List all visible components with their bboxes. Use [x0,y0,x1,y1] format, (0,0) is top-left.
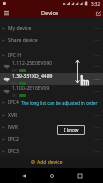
button[interactable]: Home [45,169,58,182]
button[interactable]: Back [17,169,30,182]
button[interactable]: Recents [73,169,86,182]
staticText: XVR [8,112,18,119]
staticText: The long list can be adjusted in order [21,100,98,106]
staticText: IPC [12,93,18,97]
staticText: Device [41,9,59,17]
button[interactable]: 1.39-351XD_4489 [0,73,103,85]
button[interactable]: Share device [0,34,103,46]
button[interactable]: Menu [1,8,12,18]
button[interactable]: NVR [0,121,103,133]
staticText: IPC3 [8,148,19,155]
button[interactable]: IPC H [0,49,103,61]
staticText: IPC H [8,52,21,59]
staticText: 1.39-351XD_4489 [12,73,53,80]
button[interactable]: Add device [0,156,103,168]
staticText: Add device [37,159,63,166]
staticText: Share device [8,37,38,44]
button[interactable]: XVR [0,109,103,121]
staticText: IPC4 [8,99,19,106]
staticText: NVR [8,124,18,131]
staticText: My device [8,25,32,32]
button[interactable]: IPC2 [0,133,103,145]
staticText: IPC [12,68,18,72]
button[interactable]: IPC3 [0,145,103,157]
button[interactable]: My device [0,22,103,34]
staticText: 1.112-25E0EV090 [12,60,53,67]
button[interactable]: IPC4 [0,96,103,108]
button[interactable]: Edit [93,8,103,18]
button[interactable]: 1.100-2E16EV09 [0,85,103,97]
button[interactable]: I know [57,125,85,135]
staticText: I know [64,127,79,133]
staticText: IPC2 [8,136,19,143]
staticText: 1.100-2E16EV09 [12,85,50,92]
staticText: 3:32 [91,1,101,7]
staticText: IPC [12,81,18,85]
button[interactable]: 1.112-25E0EV090 [0,60,103,72]
